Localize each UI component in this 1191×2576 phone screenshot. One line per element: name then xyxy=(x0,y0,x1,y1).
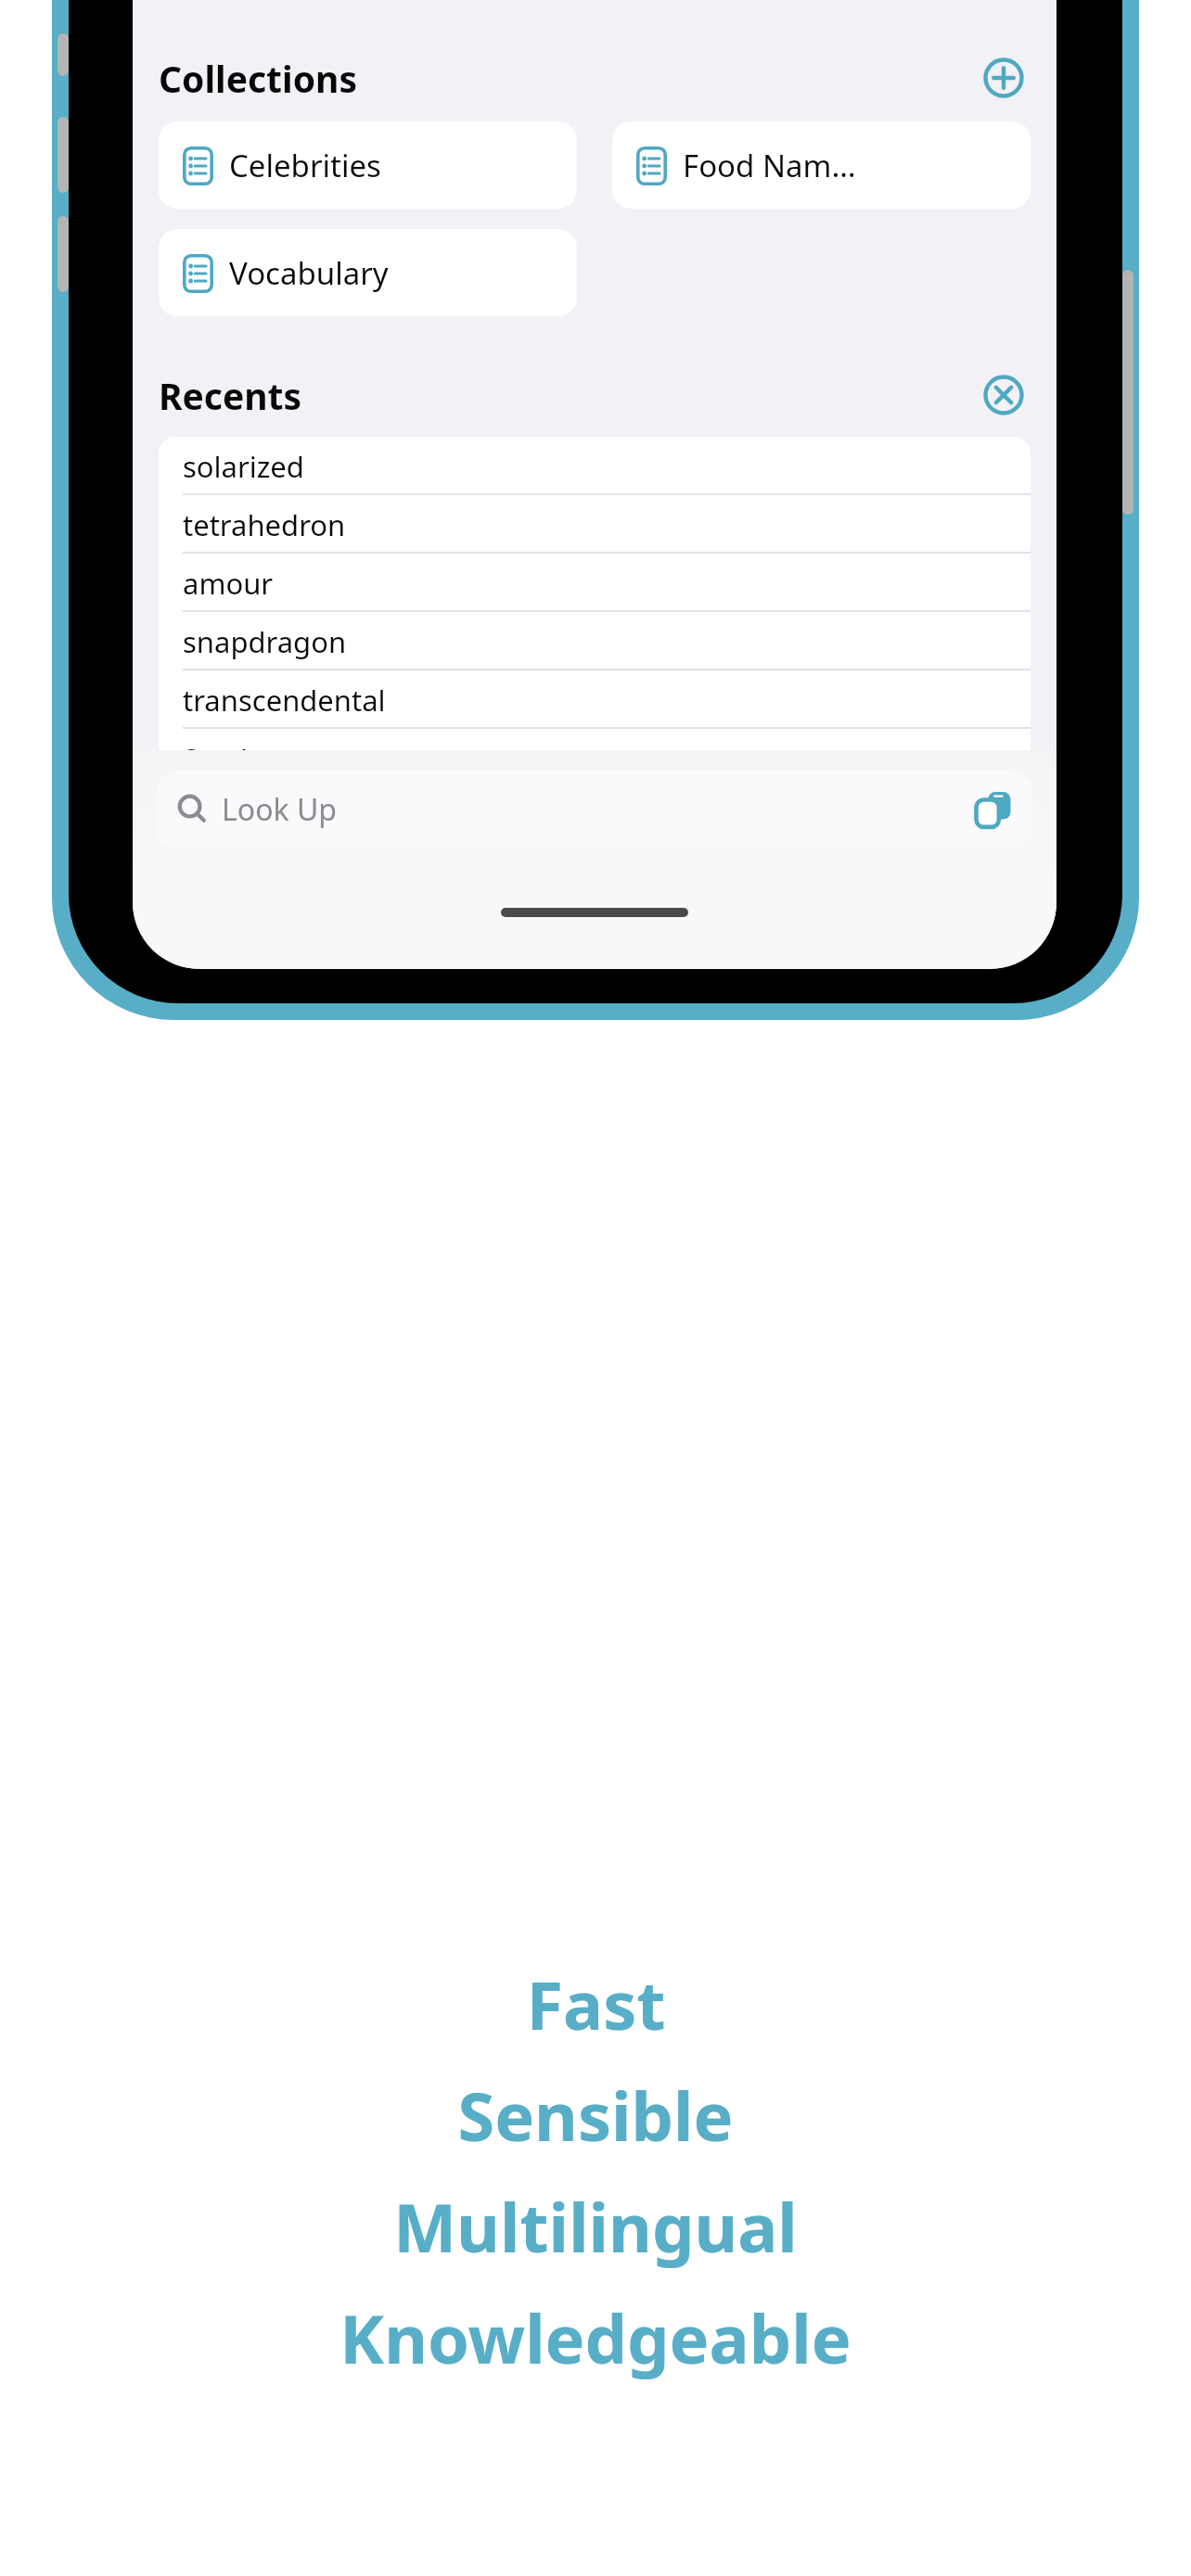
staticText: Food Nam… xyxy=(683,145,856,186)
button[interactable]: Clear recents xyxy=(977,368,1031,422)
staticText: snapdragon xyxy=(183,622,347,661)
staticText: Recents xyxy=(159,371,302,420)
button[interactable]: transcendental xyxy=(159,670,1031,729)
staticText: transcendental xyxy=(183,681,386,720)
button[interactable]: amour xyxy=(159,554,1031,612)
button[interactable]: San Jose xyxy=(159,729,1031,787)
button[interactable]: Vocabulary xyxy=(159,229,577,316)
staticText: Fast xyxy=(526,1958,666,2049)
staticText: Steve Jobs xyxy=(183,797,320,836)
button[interactable]: Paste xyxy=(971,787,1016,832)
button[interactable]: Food Nam… xyxy=(612,121,1031,209)
staticText: Vocabulary xyxy=(229,252,389,294)
staticText: Look Up xyxy=(222,789,337,830)
staticText: San Jose xyxy=(183,739,296,778)
button[interactable]: tetrahedron xyxy=(159,495,1031,554)
button[interactable]: Look Up xyxy=(157,771,1032,848)
staticText: tetrahedron xyxy=(183,505,346,544)
button[interactable]: solarized xyxy=(159,437,1031,495)
staticText: Sensible xyxy=(457,2070,734,2161)
button[interactable]: Steve Jobs xyxy=(159,787,1031,846)
staticText: Celebrities xyxy=(229,145,381,186)
staticText: Collections xyxy=(159,54,357,103)
staticText: Multilingual xyxy=(393,2181,798,2272)
button[interactable]: Celebrities xyxy=(159,121,577,209)
staticText: amour xyxy=(183,564,274,603)
button[interactable]: snapdragon xyxy=(159,612,1031,670)
staticText: solarized xyxy=(183,447,304,486)
staticText: Knowledgeable xyxy=(339,2292,852,2383)
button[interactable]: Add collection xyxy=(977,51,1031,105)
